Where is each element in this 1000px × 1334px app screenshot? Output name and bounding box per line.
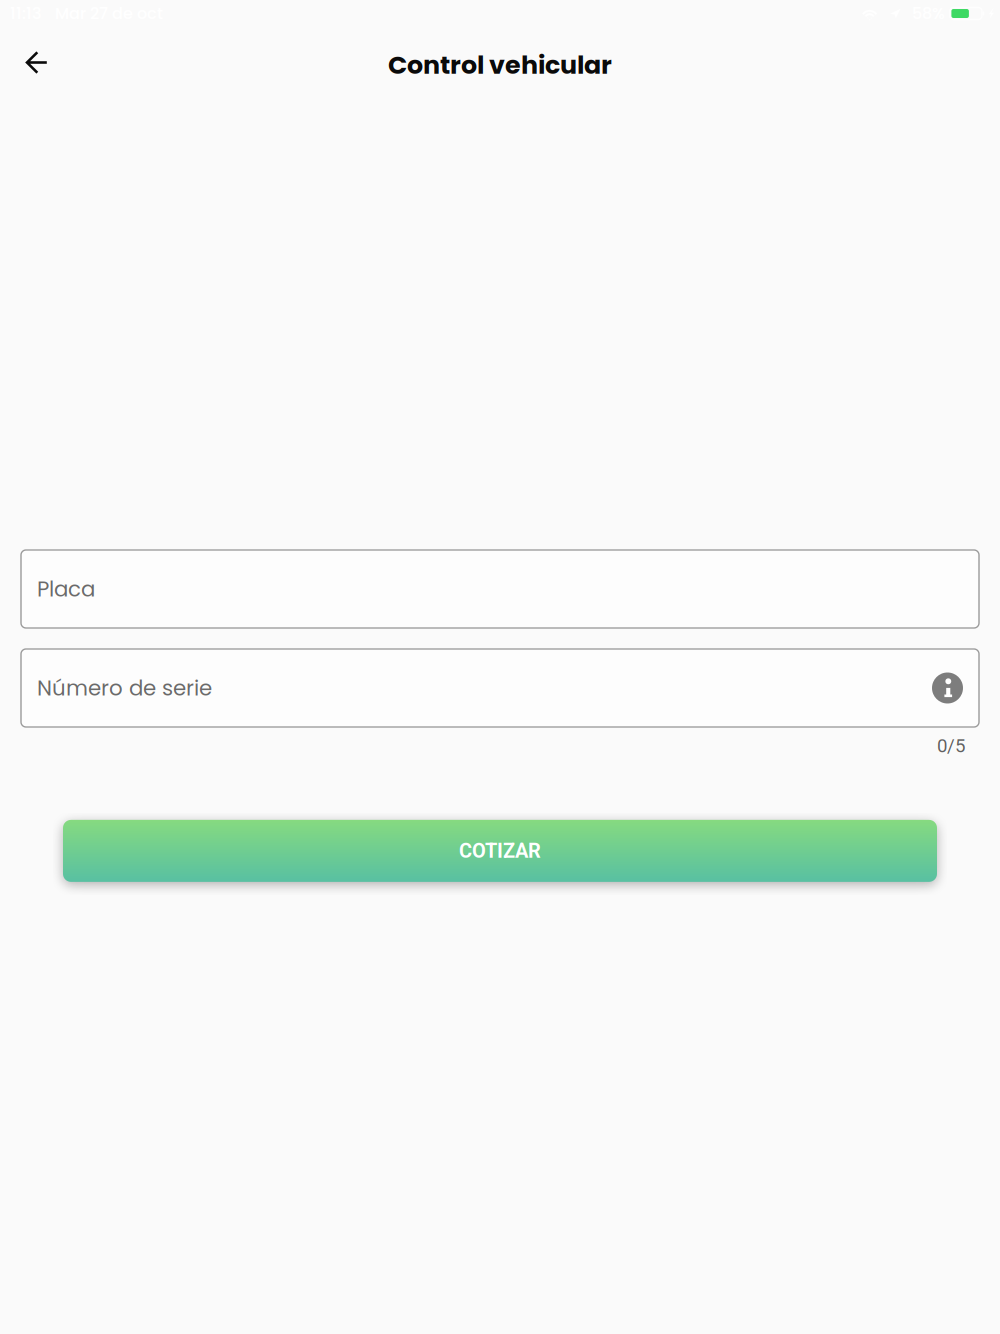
button[interactable]: More information (932, 672, 963, 703)
button[interactable]: Back (0, 27, 66, 93)
button[interactable]: COTIZAR (63, 820, 937, 882)
staticText: COTIZAR (459, 839, 541, 863)
button[interactable]: Número de serie (21, 649, 979, 727)
button[interactable]: Placa (21, 550, 979, 628)
staticText: Control vehicular (388, 47, 612, 83)
staticText: Placa (37, 574, 95, 604)
staticText: 0/5 (937, 735, 965, 757)
staticText: Número de serie (37, 673, 212, 703)
